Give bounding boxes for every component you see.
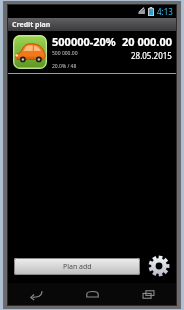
- staticText: 20 000.00: [122, 34, 172, 49]
- staticText: Plan add: [63, 262, 92, 272]
- button[interactable]: Settings: [146, 253, 172, 279]
- button[interactable]: Recent apps: [120, 283, 176, 305]
- button[interactable]: Plan add: [14, 258, 140, 275]
- button[interactable]: Home: [64, 283, 120, 305]
- staticText: 28.05.2015: [131, 50, 172, 61]
- staticText: 500 000.00: [52, 50, 131, 57]
- staticText: Credit plan: [12, 20, 51, 30]
- staticText: 4:13: [157, 6, 173, 17]
- staticText: 20.0% / 48: [52, 63, 77, 70]
- button[interactable]: Back: [8, 283, 64, 305]
- button[interactable]: 500000-20%: [8, 31, 176, 73]
- staticText: 500000-20%: [52, 34, 122, 49]
